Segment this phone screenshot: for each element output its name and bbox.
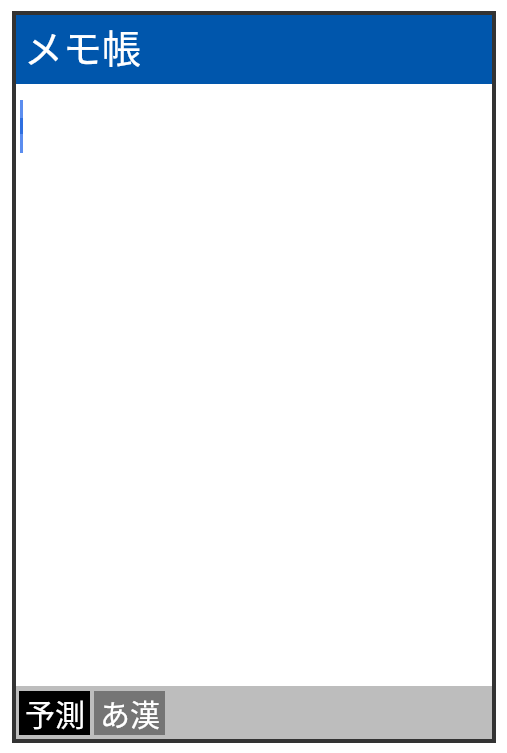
button[interactable]: 予測	[19, 691, 90, 735]
button[interactable]: あ漢	[94, 691, 165, 735]
staticText: メモ帳	[24, 18, 142, 74]
button[interactable]: メモ帳	[16, 15, 492, 84]
button[interactable]: メモ入力欄	[16, 84, 492, 686]
staticText: 予測	[25, 691, 85, 731]
staticText: あ漢	[100, 691, 160, 731]
